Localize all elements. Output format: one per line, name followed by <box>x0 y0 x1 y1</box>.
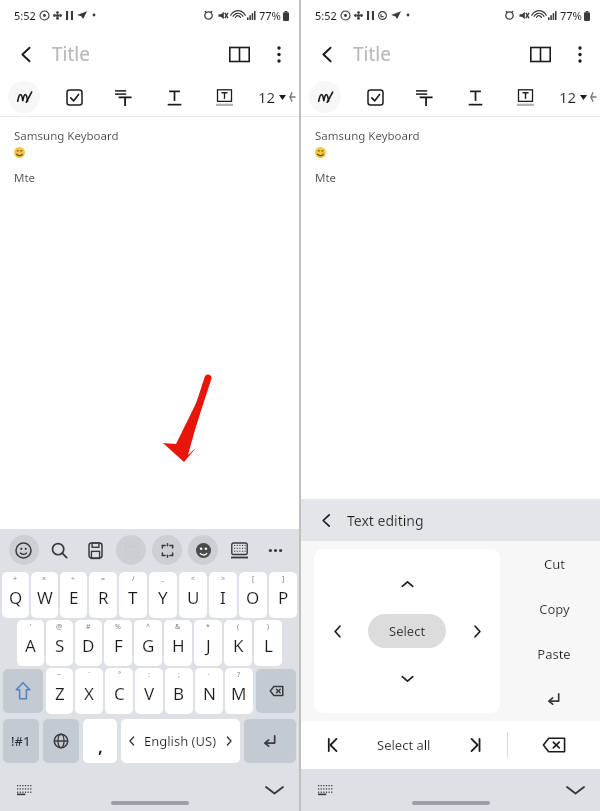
button[interactable]: Language <box>43 719 79 763</box>
button[interactable]: + <box>2 572 29 618</box>
button[interactable]: Keyboard layout <box>10 776 38 804</box>
button[interactable]: , <box>83 719 117 763</box>
button[interactable]: × <box>31 572 58 618</box>
button[interactable]: > <box>209 572 237 618</box>
button[interactable]: Move left <box>322 616 352 646</box>
button[interactable]: @ <box>46 620 73 666</box>
button[interactable]: Move right <box>462 616 492 646</box>
button[interactable]: Back <box>8 36 44 72</box>
button[interactable]: Move to end <box>445 721 507 769</box>
button[interactable]: Shift <box>3 669 43 713</box>
button[interactable]: Collapse toolbar <box>290 82 295 112</box>
button[interactable]: ` <box>75 668 103 714</box>
button[interactable]: · <box>195 668 223 714</box>
button[interactable]: Reading view <box>520 34 560 74</box>
staticText: Paste <box>537 645 571 663</box>
staticText: Title <box>52 41 90 67</box>
button[interactable]: Collapse toolbar <box>591 82 596 112</box>
button[interactable]: ° <box>105 668 133 714</box>
button[interactable]: _ <box>149 572 177 618</box>
button[interactable]: Cut <box>508 541 600 586</box>
button[interactable]: !#1 <box>3 719 39 763</box>
button[interactable]: Enter <box>508 676 600 721</box>
button[interactable]: Checklist <box>58 81 90 113</box>
staticText: 12 <box>559 87 577 107</box>
button[interactable]: # <box>75 620 102 666</box>
staticText: D <box>82 634 95 657</box>
button[interactable]: 12 <box>254 83 290 111</box>
button[interactable]: ÷ <box>60 572 87 618</box>
staticText: Q <box>9 586 23 609</box>
button[interactable]: Copy <box>508 586 600 631</box>
button[interactable]: Backspace <box>508 721 600 769</box>
button[interactable]: Clipboard <box>77 533 113 567</box>
button[interactable]: & <box>164 620 192 666</box>
button[interactable]: Stickers <box>185 533 221 567</box>
button[interactable]: Hide keyboard <box>259 775 289 805</box>
staticText: ' <box>30 622 32 632</box>
button[interactable]: Hide keyboard <box>560 775 590 805</box>
button[interactable]: : <box>135 668 163 714</box>
button[interactable]: Paste <box>508 631 600 676</box>
staticText: ) <box>267 622 270 632</box>
button[interactable]: More options <box>259 34 299 74</box>
staticText: O <box>246 586 260 609</box>
button[interactable]: = <box>89 572 117 618</box>
button[interactable]: Checklist <box>359 81 391 113</box>
button[interactable]: More <box>257 533 293 567</box>
button[interactable]: Handwriting <box>309 81 341 113</box>
button[interactable]: [ <box>239 572 267 618</box>
staticText: Select <box>389 622 426 640</box>
staticText: [ <box>252 574 255 584</box>
button[interactable]: ( <box>224 620 252 666</box>
button[interactable]: Backspace <box>256 669 296 713</box>
button[interactable]: Handwriting <box>8 81 40 113</box>
button[interactable]: Keyboard layout <box>311 776 339 804</box>
staticText: E <box>69 586 79 609</box>
button[interactable]: 12 <box>555 83 591 111</box>
button[interactable]: Back <box>309 36 345 72</box>
button[interactable]: Text background <box>509 81 541 113</box>
button[interactable]: / <box>119 572 147 618</box>
button[interactable]: ? <box>225 668 253 714</box>
button[interactable]: Move to start <box>301 721 363 769</box>
button[interactable]: Text style <box>158 81 190 113</box>
button[interactable]: ^ <box>134 620 162 666</box>
staticText: ° <box>118 670 121 680</box>
button[interactable]: Text background <box>208 81 240 113</box>
button[interactable]: English (US) <box>121 719 240 763</box>
button[interactable]: ) <box>254 620 282 666</box>
button[interactable]: Resize keyboard <box>149 533 185 567</box>
button[interactable]: % <box>104 620 132 666</box>
staticText: !#1 <box>11 732 31 750</box>
staticText: K <box>233 634 244 657</box>
button[interactable]: Search <box>41 533 77 567</box>
button[interactable]: < <box>179 572 207 618</box>
button[interactable]: Calculator <box>113 533 149 567</box>
button[interactable]: ~ <box>46 668 73 714</box>
button[interactable]: Back <box>311 505 341 535</box>
button[interactable]: ' <box>17 620 44 666</box>
staticText: J <box>206 634 211 657</box>
staticText: Mte <box>14 170 36 186</box>
button[interactable]: Text style <box>459 81 491 113</box>
button[interactable]: Move up <box>392 569 422 599</box>
button[interactable]: Emoji <box>6 533 41 567</box>
button[interactable]: Reading view <box>219 34 259 74</box>
button[interactable]: Move down <box>392 663 422 693</box>
button[interactable]: Enter <box>244 719 296 763</box>
button[interactable]: Paragraph style <box>108 81 140 113</box>
button[interactable]: More options <box>560 34 600 74</box>
staticText: Copy <box>539 600 570 618</box>
button[interactable]: ] <box>269 572 297 618</box>
staticText: + <box>13 574 18 584</box>
staticText: @ <box>56 622 63 632</box>
button[interactable]: Select <box>368 614 446 648</box>
button[interactable]: Paragraph style <box>409 81 441 113</box>
button[interactable]: Select all <box>363 721 445 769</box>
button[interactable]: ; <box>165 668 193 714</box>
staticText: S <box>55 634 65 657</box>
button[interactable]: * <box>194 620 222 666</box>
staticText: # <box>86 622 91 632</box>
button[interactable]: Keyboard modes <box>221 533 257 567</box>
